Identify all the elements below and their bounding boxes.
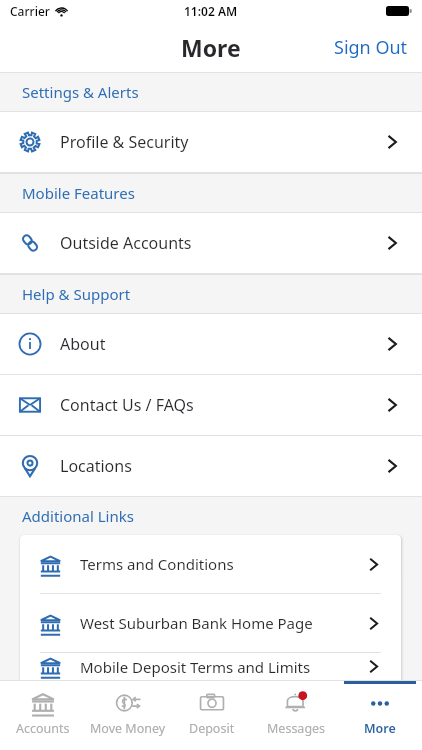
staticText: Outside Accounts (60, 232, 192, 254)
button[interactable]: Mobile Deposit Terms and Limits (20, 653, 401, 680)
staticText: Accounts (16, 720, 70, 737)
staticText: West Suburban Bank Home Page (80, 613, 313, 633)
button[interactable]: Outside Accounts (0, 213, 422, 273)
button[interactable]: Profile & Security (0, 112, 422, 172)
button[interactable]: Locations (0, 436, 422, 496)
button[interactable]: West Suburban Bank Home Page (20, 594, 401, 652)
staticText: Mobile Features (22, 183, 135, 203)
staticText: Messages (267, 720, 326, 737)
button[interactable]: Messages (254, 681, 338, 750)
button[interactable]: Move Money (85, 681, 170, 750)
staticText: More (181, 32, 241, 63)
button[interactable]: Accounts (0, 681, 85, 750)
staticText: Help & Support (22, 284, 131, 304)
staticText: Deposit (189, 720, 235, 737)
button[interactable]: About (0, 314, 422, 374)
staticText: Terms and Conditions (80, 554, 234, 574)
staticText: 11:02 AM (184, 3, 238, 19)
button[interactable]: Sign Out (320, 27, 422, 68)
staticText: About (60, 333, 106, 355)
staticText: Settings & Alerts (22, 82, 139, 102)
button[interactable]: Terms and Conditions (20, 535, 401, 593)
button[interactable]: More (338, 681, 422, 750)
staticText: Mobile Deposit Terms and Limits (80, 657, 311, 677)
staticText: Profile & Security (60, 131, 189, 153)
button[interactable]: Contact Us / FAQs (0, 375, 422, 435)
staticText: Carrier (10, 3, 50, 19)
staticText: Additional Links (22, 506, 134, 526)
staticText: Locations (60, 455, 132, 477)
staticText: Contact Us / FAQs (60, 394, 194, 416)
staticText: More (364, 720, 396, 737)
staticText: Sign Out (334, 35, 408, 60)
button[interactable]: Deposit (170, 681, 254, 750)
staticText: Move Money (90, 720, 166, 737)
